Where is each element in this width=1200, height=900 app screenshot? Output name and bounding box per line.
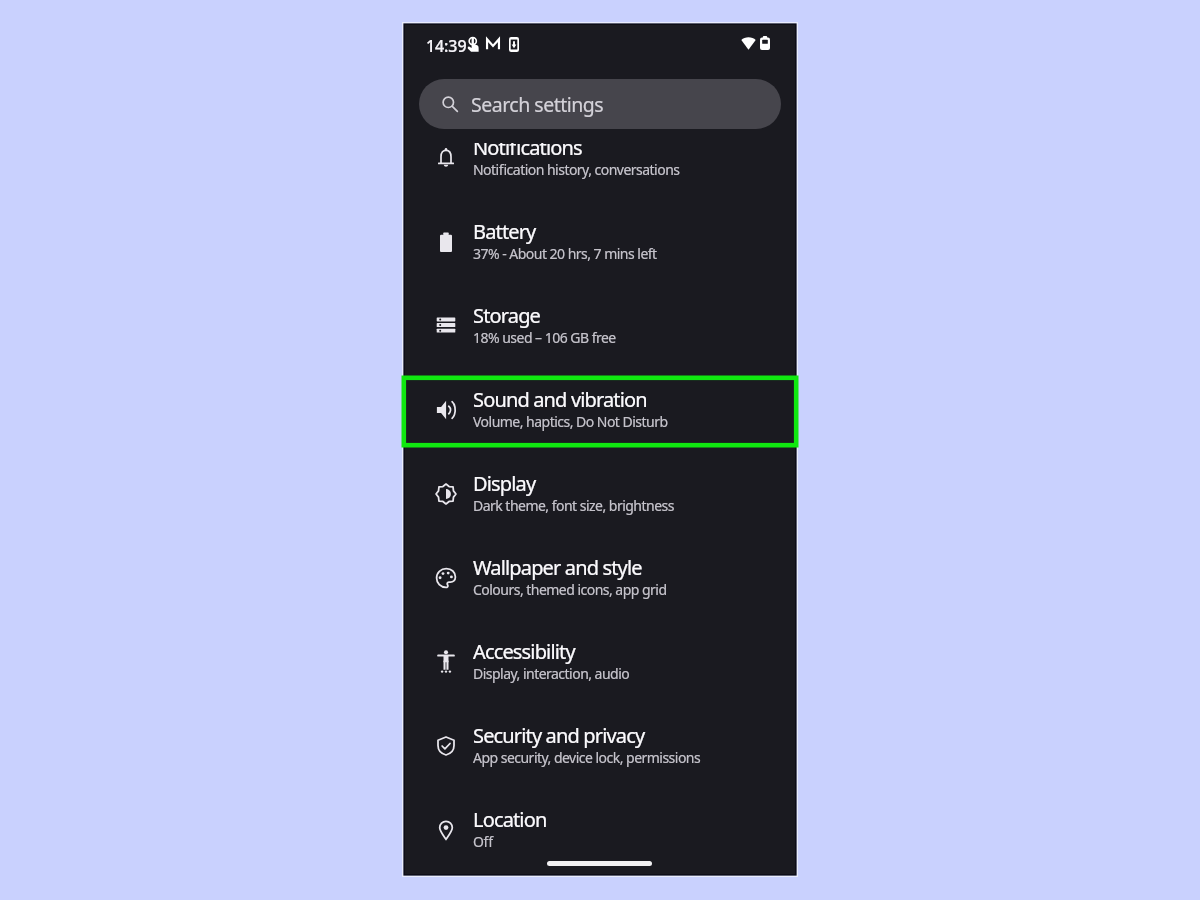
button[interactable]: Battery [405, 200, 795, 284]
staticText: Location [473, 806, 547, 833]
staticText: 37% - About 20 hrs, 7 mins left [473, 244, 657, 263]
button[interactable]: Notifications [405, 143, 795, 200]
staticText: Notification history, conversations [473, 160, 680, 179]
staticText: 18% used – 106 GB free [473, 328, 616, 347]
button[interactable]: Search settings [419, 79, 781, 129]
staticText: Security and privacy [473, 722, 645, 749]
staticText: Search settings [471, 91, 604, 118]
staticText: Battery [473, 218, 536, 245]
button[interactable]: Accessibility [405, 620, 795, 704]
button[interactable]: Wallpaper and style [405, 536, 795, 620]
staticText: Display [473, 470, 536, 497]
other: Gmail notification [486, 38, 500, 50]
other: One-handed mode [467, 37, 479, 52]
staticText: Display, interaction, audio [473, 664, 630, 683]
staticText: Storage [473, 302, 541, 329]
button[interactable]: Display [405, 452, 795, 536]
staticText: 14:39 [426, 35, 467, 57]
staticText: Wallpaper and style [473, 554, 642, 581]
button[interactable]: Sound and vibration [405, 368, 795, 452]
staticText: Colours, themed icons, app grid [473, 580, 667, 599]
button[interactable]: Storage [405, 284, 795, 368]
staticText: Notifications [473, 143, 582, 161]
staticText: Sound and vibration [473, 386, 647, 413]
staticText: Dark theme, font size, brightness [473, 496, 674, 515]
staticText: Off [473, 832, 493, 851]
staticText: Volume, haptics, Do Not Disturb [473, 412, 668, 431]
staticText: App security, device lock, permissions [473, 748, 701, 767]
button[interactable]: Security and privacy [405, 704, 795, 788]
staticText: Accessibility [473, 638, 575, 665]
button[interactable]: Location [405, 788, 795, 872]
other: Downloading [509, 37, 519, 52]
other: Battery [760, 36, 770, 50]
other: Wi-Fi [741, 36, 756, 50]
